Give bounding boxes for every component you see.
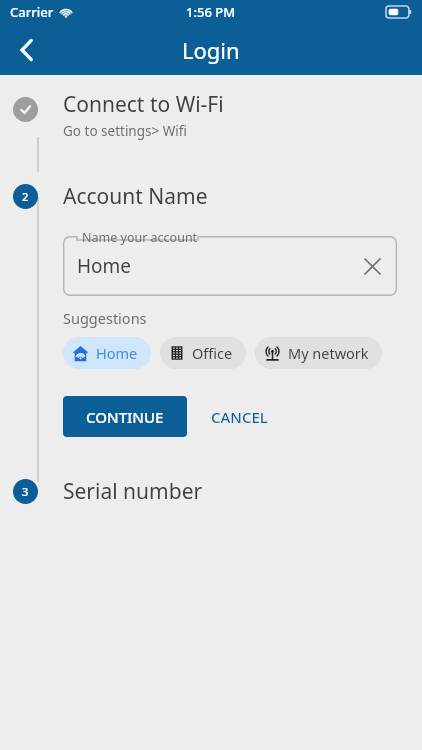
staticText: Office bbox=[192, 343, 233, 363]
staticText: Go to settings> Wifi bbox=[63, 122, 187, 140]
staticText: Account Name bbox=[63, 182, 208, 211]
staticText: CONTINUE bbox=[86, 407, 164, 427]
button[interactable]: CANCEL bbox=[199, 397, 280, 437]
staticText: Name your account bbox=[82, 229, 198, 246]
button[interactable]: Name your account bbox=[63, 236, 397, 296]
staticText: 3 bbox=[22, 484, 29, 499]
button[interactable]: My network bbox=[255, 337, 382, 369]
button[interactable]: Back bbox=[0, 24, 52, 75]
staticText: Carrier bbox=[10, 3, 54, 21]
button[interactable]: CONTINUE bbox=[63, 396, 187, 437]
staticText: Home bbox=[77, 253, 132, 279]
button[interactable]: Clear text bbox=[357, 251, 387, 281]
staticText: 1:56 PM bbox=[186, 3, 236, 21]
staticText: Login bbox=[182, 35, 240, 65]
button[interactable]: Office bbox=[160, 337, 246, 369]
staticText: Suggestions bbox=[63, 308, 147, 328]
staticText: CANCEL bbox=[211, 407, 268, 427]
staticText: Serial number bbox=[63, 477, 203, 506]
staticText: Home bbox=[96, 343, 138, 363]
staticText: My network bbox=[288, 343, 369, 363]
staticText: Connect to Wi-Fi bbox=[63, 90, 224, 119]
staticText: 2 bbox=[22, 189, 29, 204]
button[interactable]: Home bbox=[63, 337, 151, 369]
